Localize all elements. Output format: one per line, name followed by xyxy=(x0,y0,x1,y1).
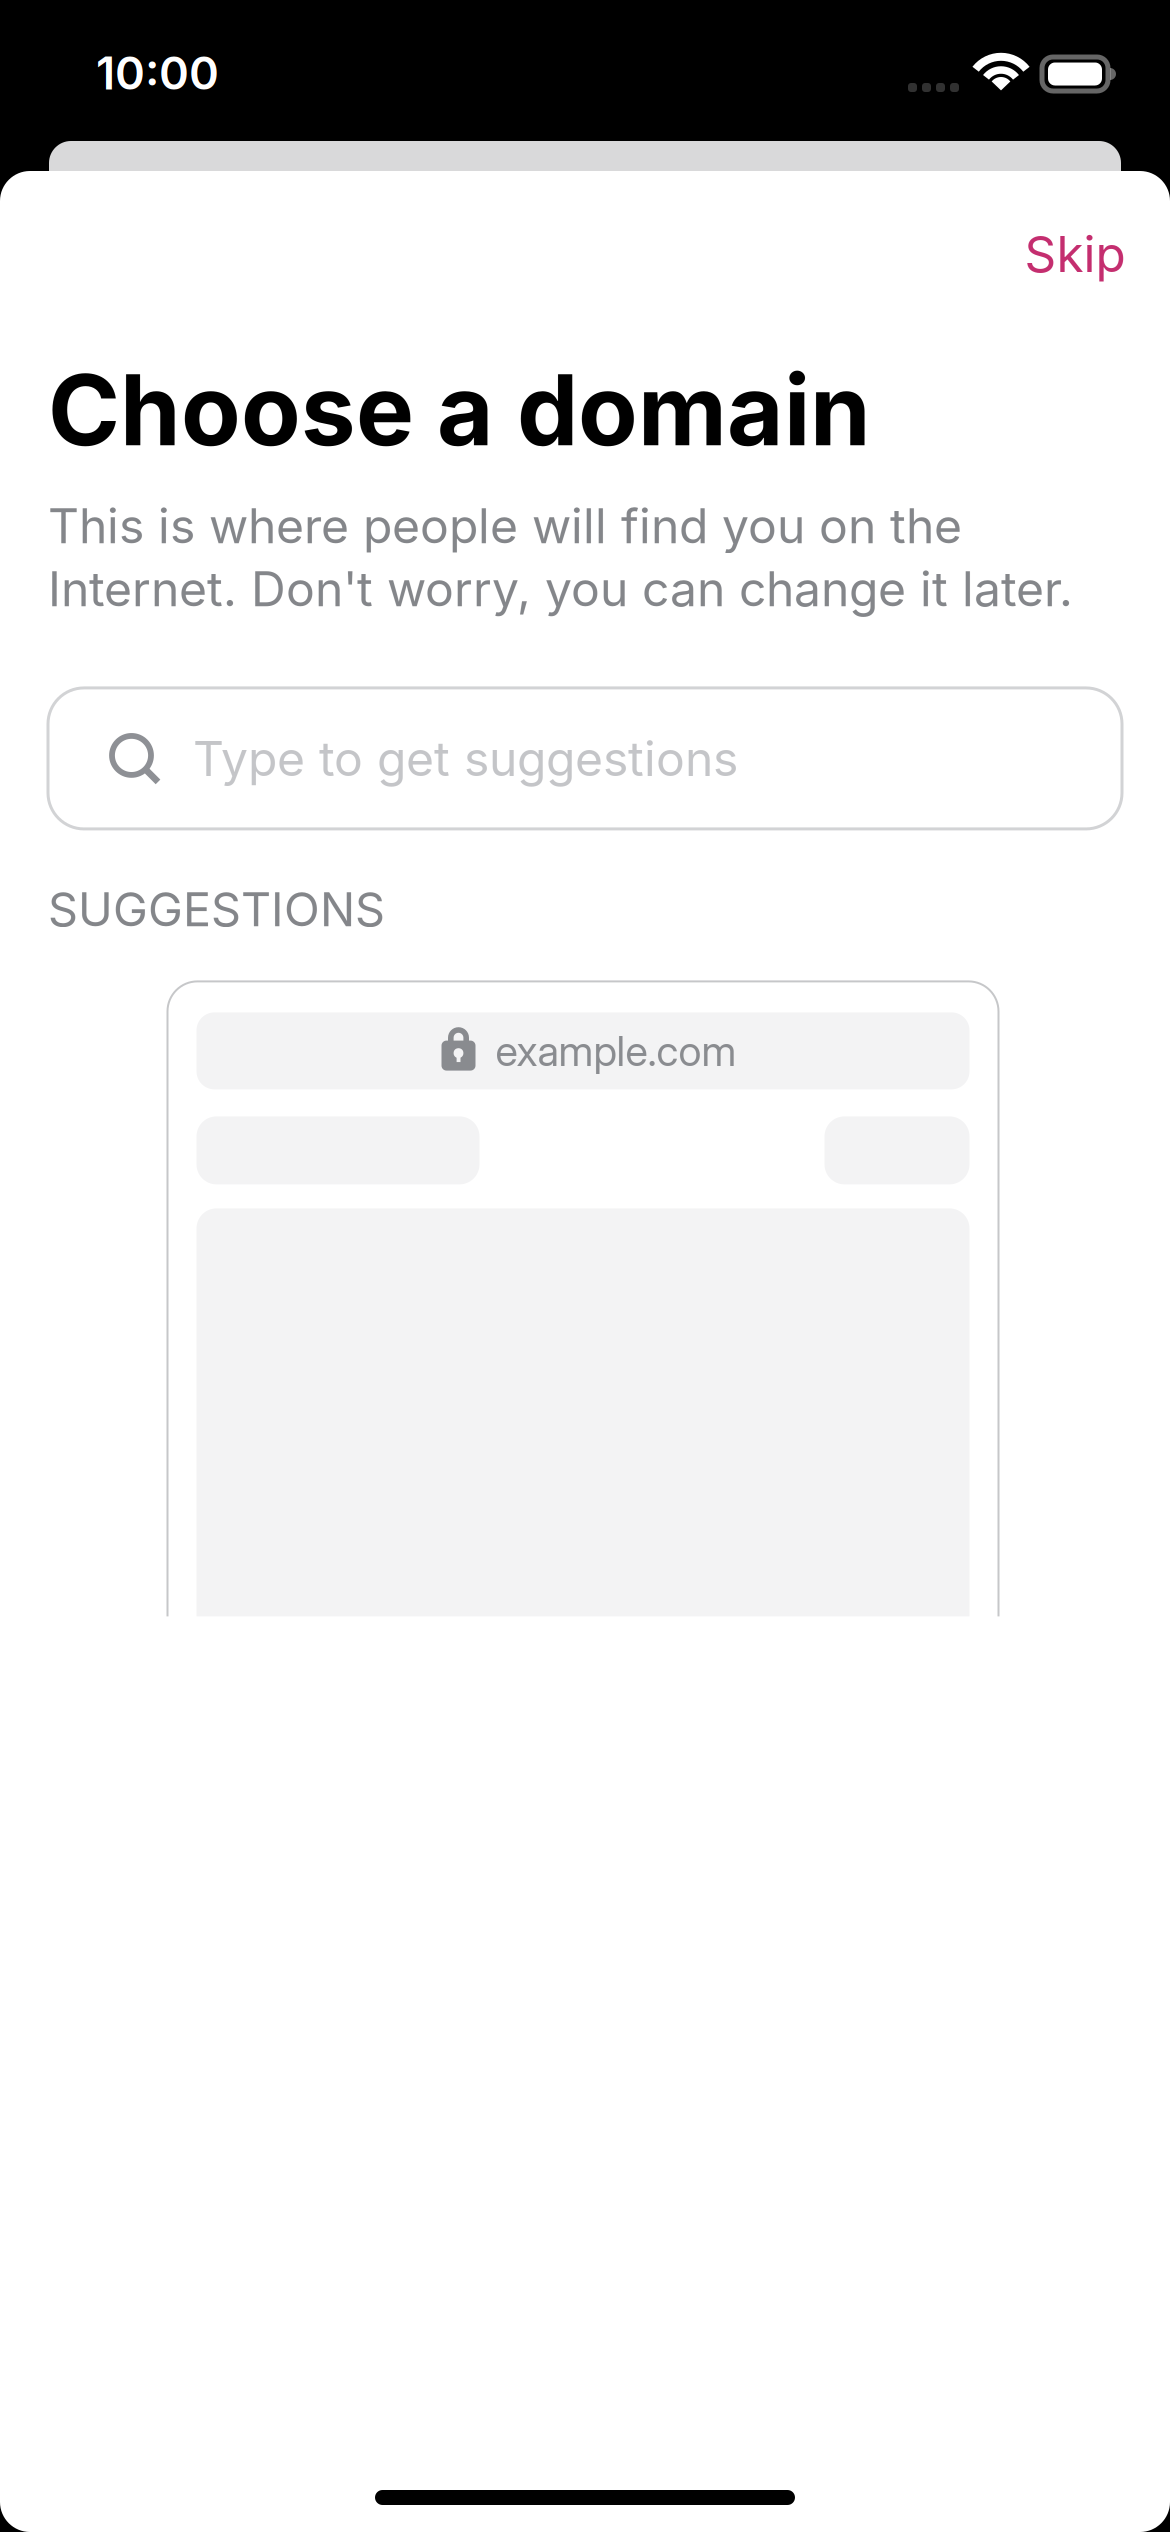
staticText: 10:00 xyxy=(96,46,219,100)
staticText: example.com xyxy=(495,1026,736,1076)
staticText: Skip xyxy=(1024,224,1125,284)
staticText: Type to get suggestions xyxy=(193,729,738,787)
button[interactable]: Skip xyxy=(999,208,1151,300)
staticText: SUGGESTIONS xyxy=(48,881,385,937)
staticText: Choose a domain xyxy=(48,351,871,469)
staticText: This is where people will find you on th… xyxy=(48,497,962,555)
staticText: Internet. Don't worry, you can change it… xyxy=(48,560,1073,618)
